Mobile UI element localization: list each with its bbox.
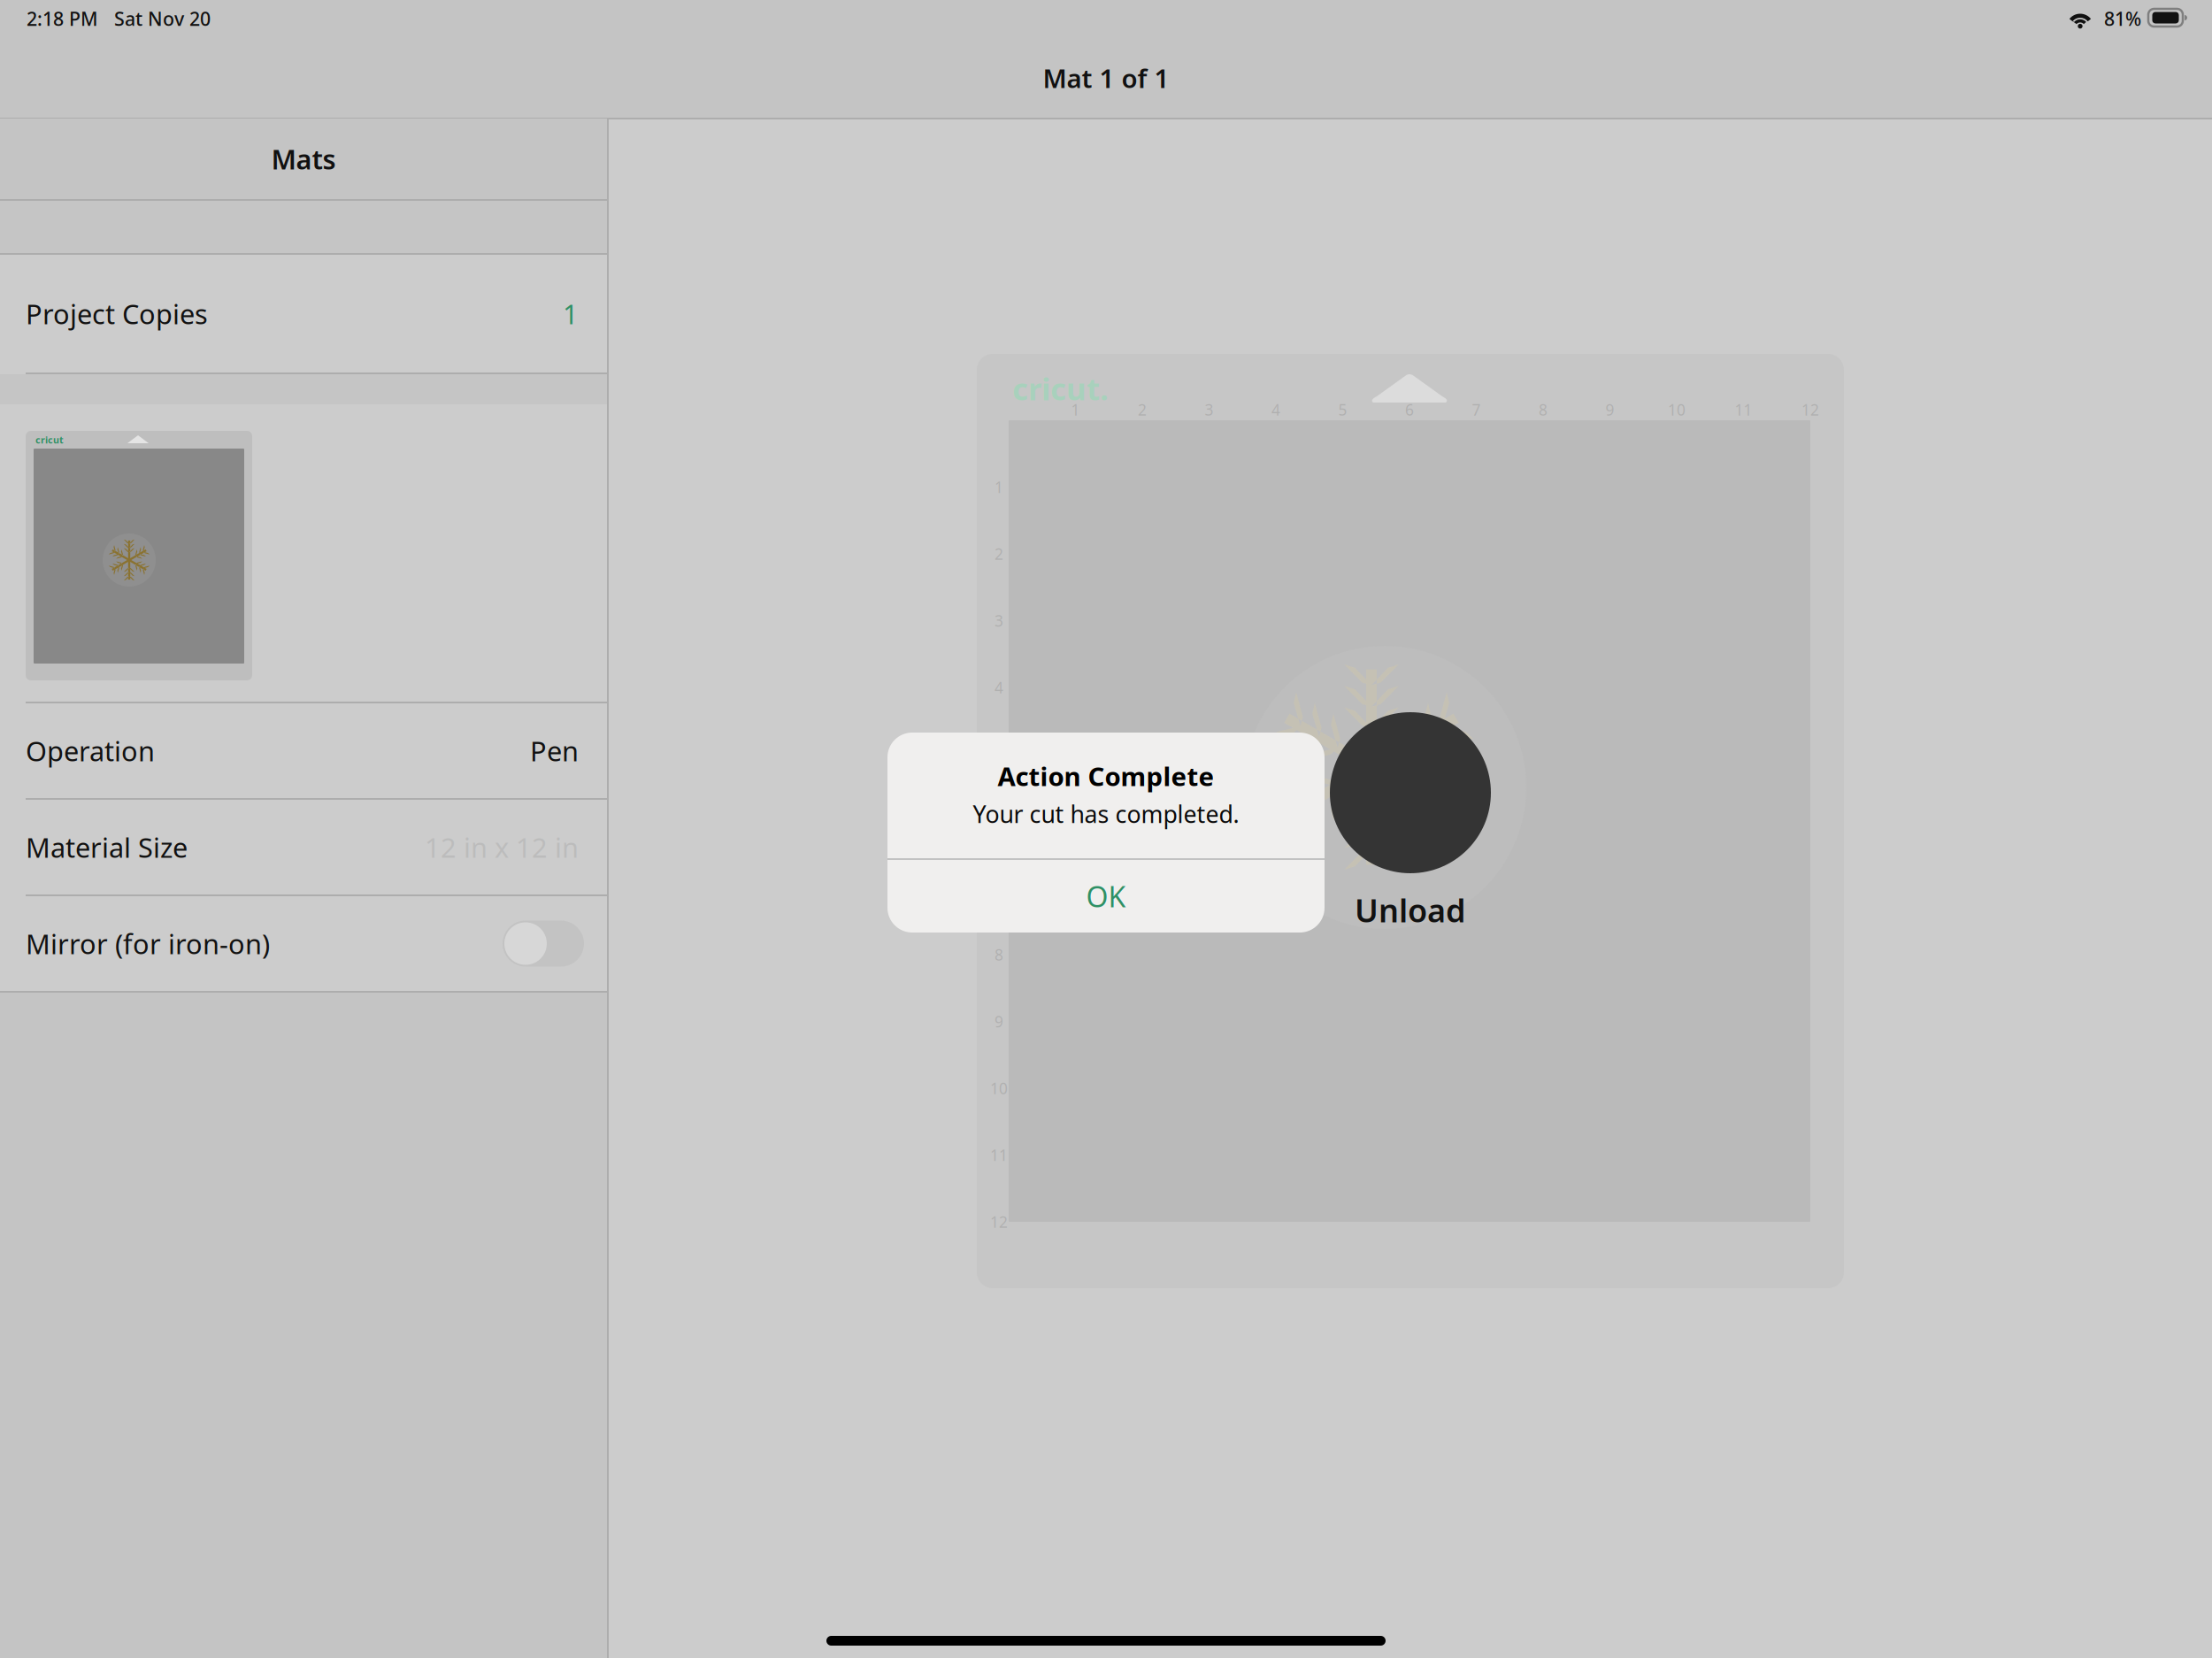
staticText: Mirror (for iron-on) <box>26 926 270 962</box>
staticText: 1 <box>1071 399 1080 420</box>
staticText: 9 <box>1605 399 1614 420</box>
staticText: 81% <box>2104 6 2141 31</box>
button[interactable]: Mat 1 of 1 <box>929 63 1283 93</box>
staticText: 10 <box>1668 399 1686 420</box>
staticText: 5 <box>1338 399 1347 420</box>
staticText: 11 <box>990 1145 1008 1165</box>
staticText: 12 in x 12 in <box>425 829 579 865</box>
staticText: 1 <box>995 477 1003 497</box>
staticText: 4 <box>1271 399 1280 420</box>
staticText: Unload <box>1355 889 1466 931</box>
staticText: 8 <box>995 944 1003 965</box>
staticText: 2:18 PM <box>27 6 98 31</box>
staticText: 1 <box>563 296 579 332</box>
staticText: Mat 1 of 1 <box>1043 61 1169 95</box>
staticText: Project Copies <box>26 296 208 332</box>
staticText: 8 <box>1539 399 1548 420</box>
staticText: Your cut has completed. <box>973 798 1239 830</box>
button[interactable]: Mirror (for iron-on) <box>0 896 607 991</box>
staticText: 2 <box>995 544 1003 564</box>
staticText: 6 <box>995 811 1003 831</box>
staticText: cricut. <box>1012 368 1109 409</box>
staticText: Sat Nov 20 <box>114 6 211 31</box>
staticText: cricut <box>35 433 64 446</box>
staticText: 10 <box>990 1078 1008 1098</box>
staticText: 3 <box>995 610 1003 631</box>
staticText: Material Size <box>26 829 188 865</box>
staticText: Mats <box>271 141 336 177</box>
staticText: 3 <box>1205 399 1214 420</box>
button[interactable]: Unload <box>1330 712 1491 925</box>
staticText: OK <box>1086 877 1126 915</box>
button[interactable]: Operation <box>0 703 607 798</box>
staticText: 12 <box>990 1212 1008 1232</box>
staticText: 12 <box>1801 399 1819 420</box>
staticText: 2 <box>1138 399 1147 420</box>
staticText: 6 <box>1405 399 1414 420</box>
button[interactable]: Material Size <box>0 800 607 894</box>
staticText: 4 <box>995 677 1003 698</box>
button[interactable]: Project Copies <box>0 255 607 372</box>
button[interactable]: OK <box>887 860 1325 933</box>
button[interactable]: Mat 1 preview <box>0 404 607 702</box>
staticText: Operation <box>26 733 155 769</box>
staticText: Action Complete <box>998 759 1214 793</box>
staticText: 7 <box>1472 399 1481 420</box>
staticText: Pen <box>530 733 579 769</box>
staticText: 9 <box>995 1011 1003 1032</box>
button[interactable]: Mats <box>0 119 607 199</box>
staticText: 11 <box>1735 399 1752 420</box>
